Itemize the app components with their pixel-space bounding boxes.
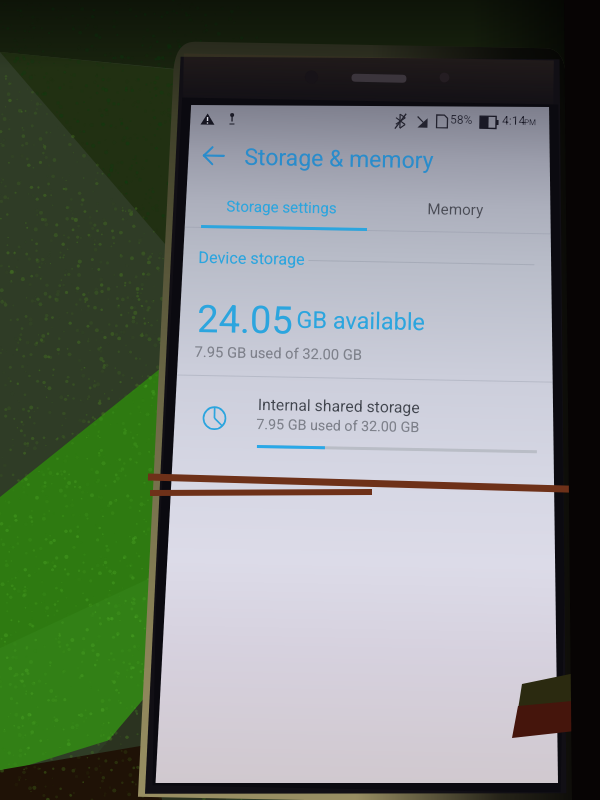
staticText: 24.05 <box>197 297 294 344</box>
staticText: 4:14 <box>502 113 526 128</box>
button[interactable]: Internal shared storage <box>175 380 568 473</box>
button[interactable]: Back <box>194 136 233 174</box>
button[interactable]: Memory <box>383 186 528 235</box>
staticText: GB available <box>296 306 426 336</box>
staticText: Internal shared storage <box>258 395 420 417</box>
staticText: Storage & memory <box>244 144 435 174</box>
staticText: Memory <box>427 200 483 219</box>
staticText: Device storage <box>198 248 306 269</box>
staticText: 7.95 GB used of 32.00 GB <box>256 416 419 436</box>
staticText: Storage settings <box>226 197 338 217</box>
button[interactable]: Storage settings <box>179 181 384 231</box>
staticText: PM <box>524 118 537 127</box>
staticText: 58% <box>450 113 473 127</box>
staticText: 7.95 GB used of 32.00 GB <box>195 343 363 363</box>
